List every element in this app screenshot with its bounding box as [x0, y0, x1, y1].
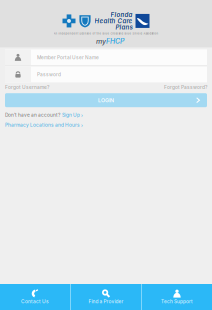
- staticText: LOGIN: [98, 97, 114, 103]
- staticText: Don't have an account?: [5, 112, 60, 118]
- button[interactable]: Find a Provider: [71, 284, 141, 310]
- button[interactable]: Pharmacy Locations and Hours ›: [5, 122, 83, 128]
- button[interactable]: Don't have an account?: [5, 112, 83, 118]
- button[interactable]: Tech Support: [142, 284, 212, 310]
- staticText: Forgot Password?: [164, 84, 207, 90]
- staticText: FHCP: [106, 37, 124, 45]
- button[interactable]: LOGIN: [5, 93, 207, 107]
- staticText: Password: [37, 71, 61, 77]
- staticText: Contact Us: [21, 299, 49, 304]
- staticText: Member Portal User Name: [37, 54, 99, 60]
- staticText: Find a Provider: [88, 299, 123, 304]
- staticText: Forgot Username?: [5, 84, 49, 90]
- staticText: Florida: [110, 11, 132, 18]
- staticText: Sign Up ›: [62, 112, 83, 118]
- staticText: Health Care: [94, 17, 132, 25]
- staticText: Pharmacy Locations and Hours ›: [5, 122, 83, 128]
- button[interactable]: Forgot Username?: [5, 84, 49, 90]
- staticText: Plans: [115, 23, 132, 31]
- staticText: my: [96, 37, 106, 45]
- staticText: Tech Support: [161, 299, 193, 304]
- button[interactable]: Forgot Password?: [164, 84, 207, 90]
- staticText: An Independent Licensee of the Blue Cros…: [53, 32, 158, 35]
- button[interactable]: Contact Us: [0, 284, 70, 310]
